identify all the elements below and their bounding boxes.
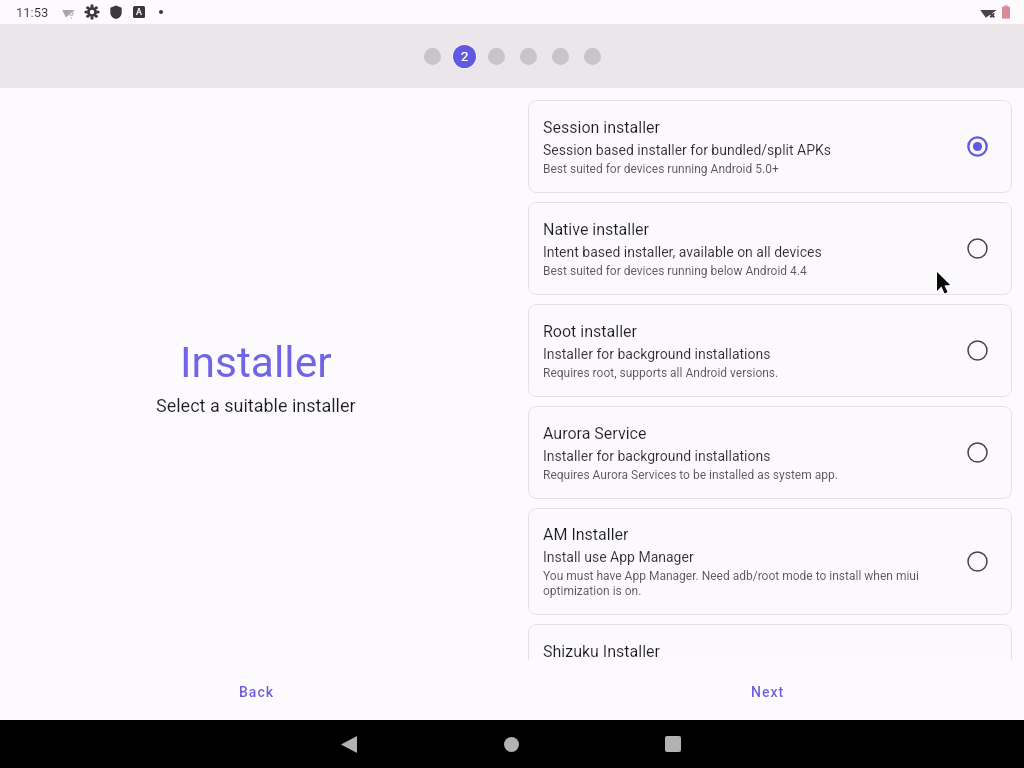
staticText: Session based installer for bundled/spli… — [543, 142, 831, 158]
staticText: Installer for background installations — [543, 448, 771, 464]
button[interactable]: Step 6 — [576, 40, 608, 72]
staticText: AM Installer — [543, 525, 629, 544]
staticText: Root installer — [543, 322, 637, 341]
staticText: Next — [751, 684, 785, 700]
button[interactable]: Next — [735, 670, 801, 710]
staticText: Select a suitable installer — [156, 395, 356, 416]
button[interactable]: Aurora Service — [528, 406, 1012, 499]
staticText: 2 — [461, 49, 469, 64]
button[interactable]: Native installer — [528, 202, 1012, 295]
staticText: Aurora Service — [543, 424, 647, 443]
staticText: Installer — [180, 338, 332, 388]
button[interactable]: Step 5 — [544, 40, 576, 72]
button[interactable]: Step 3 — [480, 40, 512, 72]
button[interactable]: Step 4 — [512, 40, 544, 72]
staticText: Back — [239, 684, 274, 700]
staticText: Requires Aurora Services to be installed… — [543, 468, 838, 482]
button[interactable]: Session installer — [528, 100, 1012, 193]
button[interactable]: AM Installer — [528, 508, 1012, 615]
staticText: Installer for background installations — [543, 346, 771, 362]
button[interactable]: Back — [223, 670, 290, 710]
staticText: Native installer — [543, 220, 649, 239]
button[interactable]: Root installer — [528, 304, 1012, 397]
staticText: Install use App Manager — [543, 549, 694, 565]
staticText: Intent based installer, available on all… — [543, 244, 822, 260]
button[interactable]: Home — [430, 720, 592, 768]
button[interactable]: Shizuku Installer — [528, 624, 1012, 660]
button[interactable]: Back — [268, 720, 430, 768]
staticText: Shizuku Installer — [543, 642, 660, 660]
staticText: Session installer — [543, 118, 660, 137]
staticText: Best suited for devices running below An… — [543, 264, 807, 278]
staticText: A — [136, 7, 142, 18]
staticText: Requires root, supports all Android vers… — [543, 366, 779, 380]
staticText: Best suited for devices running Android … — [543, 162, 779, 176]
staticText: 11:53 — [16, 5, 49, 20]
button[interactable]: Step 1 — [416, 40, 448, 72]
button[interactable]: Recent apps — [592, 720, 754, 768]
button[interactable]: Step 2 — [448, 40, 480, 72]
staticText: You must have App Manager. Need adb/root… — [543, 569, 934, 598]
